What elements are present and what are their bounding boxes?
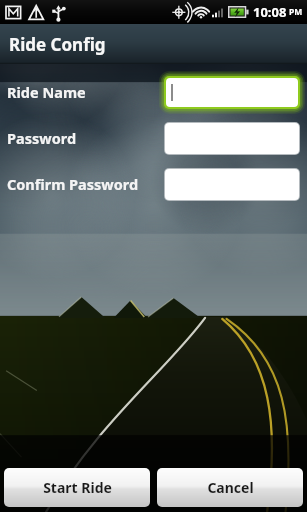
button[interactable]: Password: [164, 122, 300, 155]
button[interactable]: Start Ride: [4, 468, 150, 507]
staticText: Password: [7, 128, 164, 148]
staticText: Start Ride: [43, 478, 112, 497]
button[interactable]: Cancel: [157, 468, 303, 507]
button[interactable]: Confirm Password: [164, 168, 300, 201]
staticText: Ride Name: [7, 82, 164, 102]
staticText: Ride Config: [9, 33, 106, 56]
button[interactable]: Ride Name: [164, 76, 300, 109]
staticText: PM: [289, 6, 303, 18]
staticText: Cancel: [207, 478, 254, 497]
staticText: 10:08: [253, 3, 287, 21]
staticText: Confirm Password: [7, 174, 164, 194]
